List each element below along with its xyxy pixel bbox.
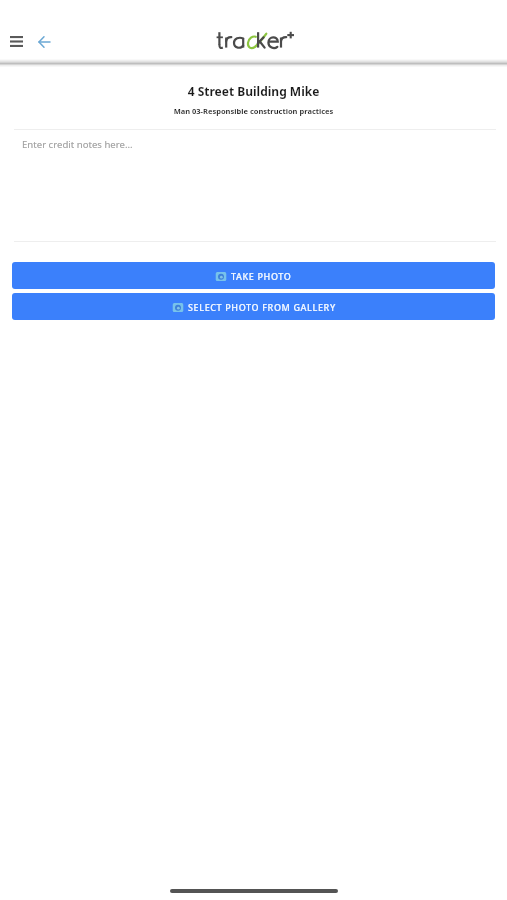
button[interactable]: TAKE PHOTO <box>12 262 495 289</box>
staticText: 4 Street Building Mike <box>0 83 507 99</box>
staticText: TAKE PHOTO <box>231 270 292 282</box>
button[interactable]: SELECT PHOTO FROM GALLERY <box>12 293 495 320</box>
button[interactable]: Back <box>30 28 58 56</box>
staticText: SELECT PHOTO FROM GALLERY <box>188 301 336 313</box>
button[interactable]: Enter credit notes here... <box>0 130 507 241</box>
button[interactable]: Menu <box>2 28 30 56</box>
staticText: Man 03-Responsible construction practice… <box>0 106 507 116</box>
staticText: Enter credit notes here... <box>22 138 133 151</box>
